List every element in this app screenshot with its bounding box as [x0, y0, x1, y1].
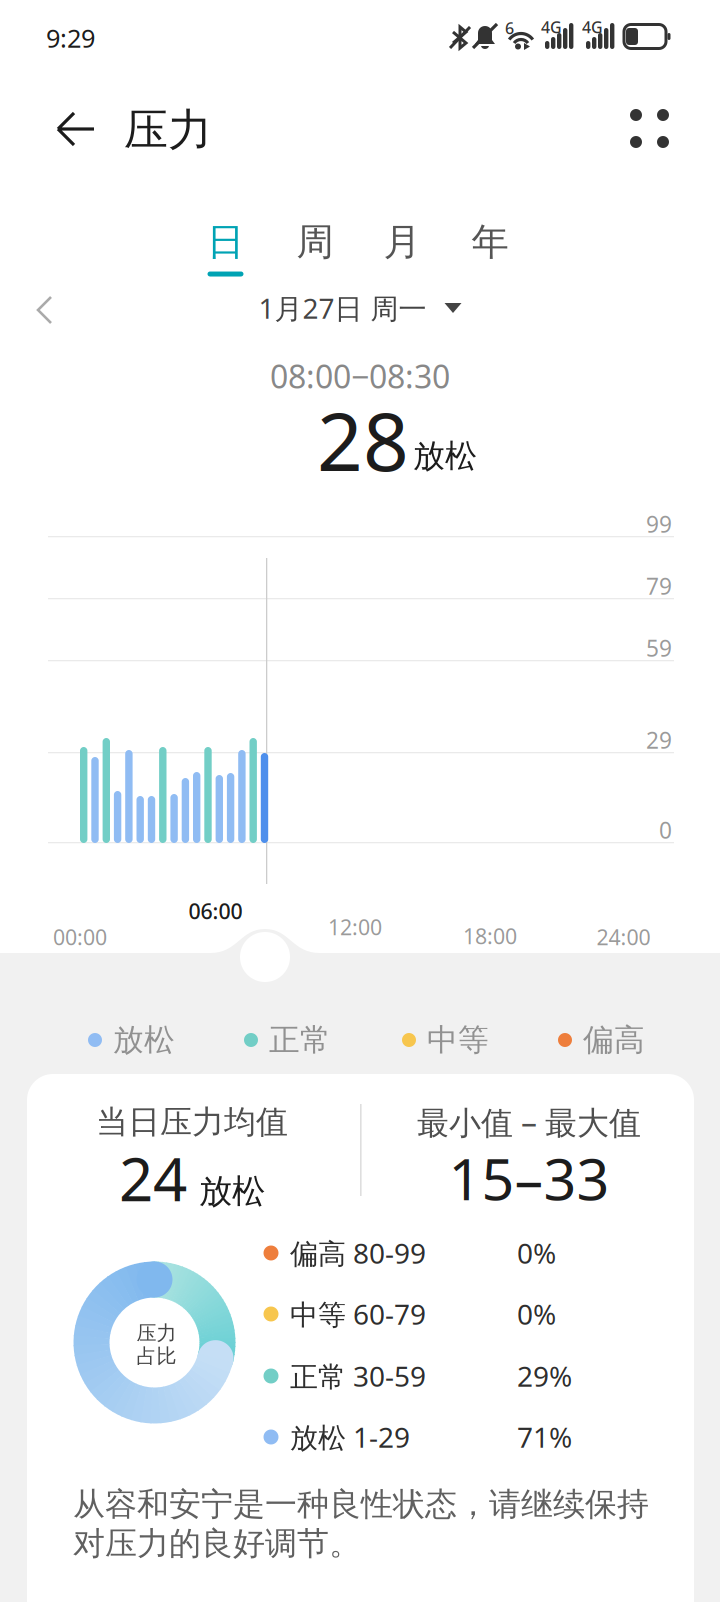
- button[interactable]: 1月27日 周一: [242, 279, 477, 337]
- button[interactable]: 月: [359, 200, 445, 282]
- staticText: 9:29: [46, 21, 95, 55]
- staticText: 从容和安宁是一种良性状态，请继续保持对压力的良好调节。: [73, 1485, 649, 1563]
- staticText: 日: [207, 219, 244, 265]
- staticText: 中等: [427, 1021, 489, 1059]
- staticText: 1月27日 周一: [258, 289, 426, 327]
- button[interactable]: 周: [272, 200, 358, 282]
- button[interactable]: 年: [447, 200, 533, 282]
- staticText: 06:00: [188, 897, 242, 925]
- staticText: 0%: [517, 1234, 556, 1272]
- staticText: 月: [383, 219, 420, 265]
- staticText: 12:00: [328, 913, 382, 941]
- staticText: 周: [296, 219, 333, 265]
- staticText: 放松: [413, 436, 477, 476]
- staticText: 0%: [517, 1295, 556, 1333]
- staticText: 28: [317, 387, 409, 493]
- button[interactable]: More options: [611, 90, 687, 166]
- staticText: 最小值 – 最大值: [417, 1101, 641, 1143]
- staticText: 4G: [541, 16, 562, 38]
- staticText: 24: [119, 1138, 187, 1218]
- staticText: 29%: [517, 1357, 572, 1395]
- staticText: 00:00: [53, 923, 107, 951]
- staticText: 放松: [113, 1021, 175, 1059]
- staticText: 4G: [582, 16, 603, 38]
- staticText: 年: [471, 219, 508, 265]
- staticText: 0: [659, 815, 672, 845]
- staticText: 15–33: [448, 1140, 609, 1216]
- button[interactable]: 日: [182, 200, 268, 282]
- staticText: 29: [646, 725, 672, 755]
- staticText: 99: [646, 509, 672, 539]
- staticText: 压力: [124, 103, 212, 157]
- staticText: 正常 30-59: [290, 1357, 426, 1395]
- staticText: 放松 1-29: [290, 1418, 410, 1456]
- staticText: 79: [646, 571, 672, 601]
- button[interactable]: Back: [38, 91, 118, 167]
- staticText: 偏高 80-99: [290, 1234, 426, 1272]
- staticText: 压力: [136, 1321, 176, 1345]
- staticText: 占比: [136, 1344, 176, 1368]
- staticText: 6: [505, 17, 514, 39]
- staticText: 放松: [199, 1171, 265, 1212]
- button[interactable]: Previous day: [21, 281, 79, 339]
- staticText: 24:00: [596, 923, 650, 951]
- staticText: 08:00−08:30: [270, 355, 450, 397]
- staticText: 71%: [517, 1418, 572, 1456]
- staticText: 18:00: [463, 922, 517, 950]
- staticText: 当日压力均值: [96, 1102, 288, 1142]
- staticText: 59: [646, 633, 672, 663]
- staticText: 偏高: [583, 1021, 645, 1059]
- staticText: 正常: [269, 1021, 331, 1059]
- staticText: 中等 60-79: [290, 1295, 426, 1333]
